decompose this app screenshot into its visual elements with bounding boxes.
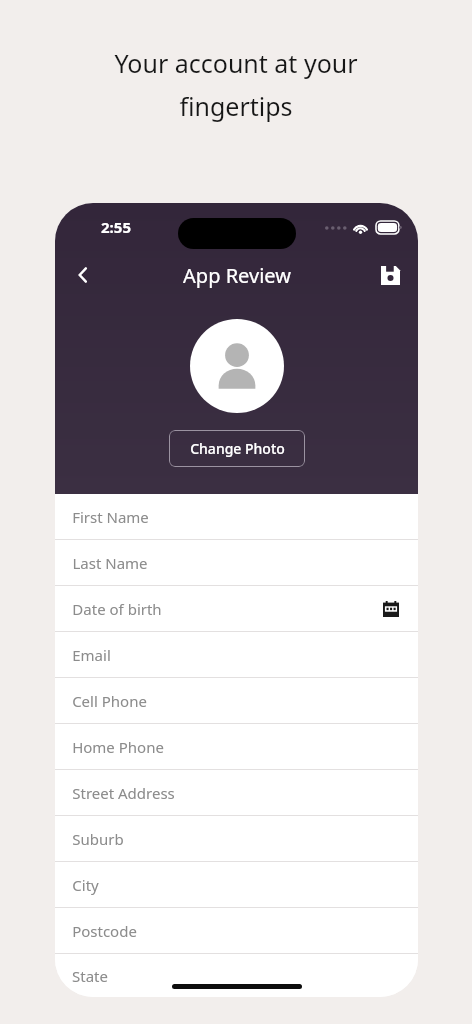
staticText: First Name	[72, 507, 149, 527]
staticText: Suburb	[72, 829, 124, 849]
button[interactable]: State	[55, 954, 418, 997]
button[interactable]: City	[55, 862, 418, 907]
staticText: State	[72, 966, 108, 986]
button[interactable]: Date of birth	[55, 586, 418, 631]
button[interactable]: First Name	[55, 494, 418, 539]
staticText: 2:55	[101, 217, 131, 237]
button[interactable]: Home Phone	[55, 724, 418, 769]
staticText: Date of birth	[72, 599, 162, 619]
button[interactable]: Suburb	[55, 816, 418, 861]
staticText: Cell Phone	[72, 691, 147, 711]
button[interactable]: Save	[370, 255, 410, 295]
staticText: City	[72, 875, 99, 895]
staticText: Home Phone	[72, 737, 164, 757]
button[interactable]: Change Photo	[169, 430, 305, 467]
staticText: Email	[72, 645, 111, 665]
button[interactable]: Cell Phone	[55, 678, 418, 723]
staticText: Your account at your	[114, 46, 358, 80]
staticText: Street Address	[72, 783, 175, 803]
button[interactable]: Street Address	[55, 770, 418, 815]
button[interactable]: Email	[55, 632, 418, 677]
button[interactable]: Postcode	[55, 908, 418, 953]
staticText: App Review	[183, 262, 291, 289]
staticText: Change Photo	[190, 439, 285, 458]
button[interactable]: Last Name	[55, 540, 418, 585]
staticText: Last Name	[72, 553, 148, 573]
staticText: fingertips	[179, 89, 293, 123]
button[interactable]: Back	[61, 253, 105, 297]
staticText: Postcode	[72, 921, 137, 941]
